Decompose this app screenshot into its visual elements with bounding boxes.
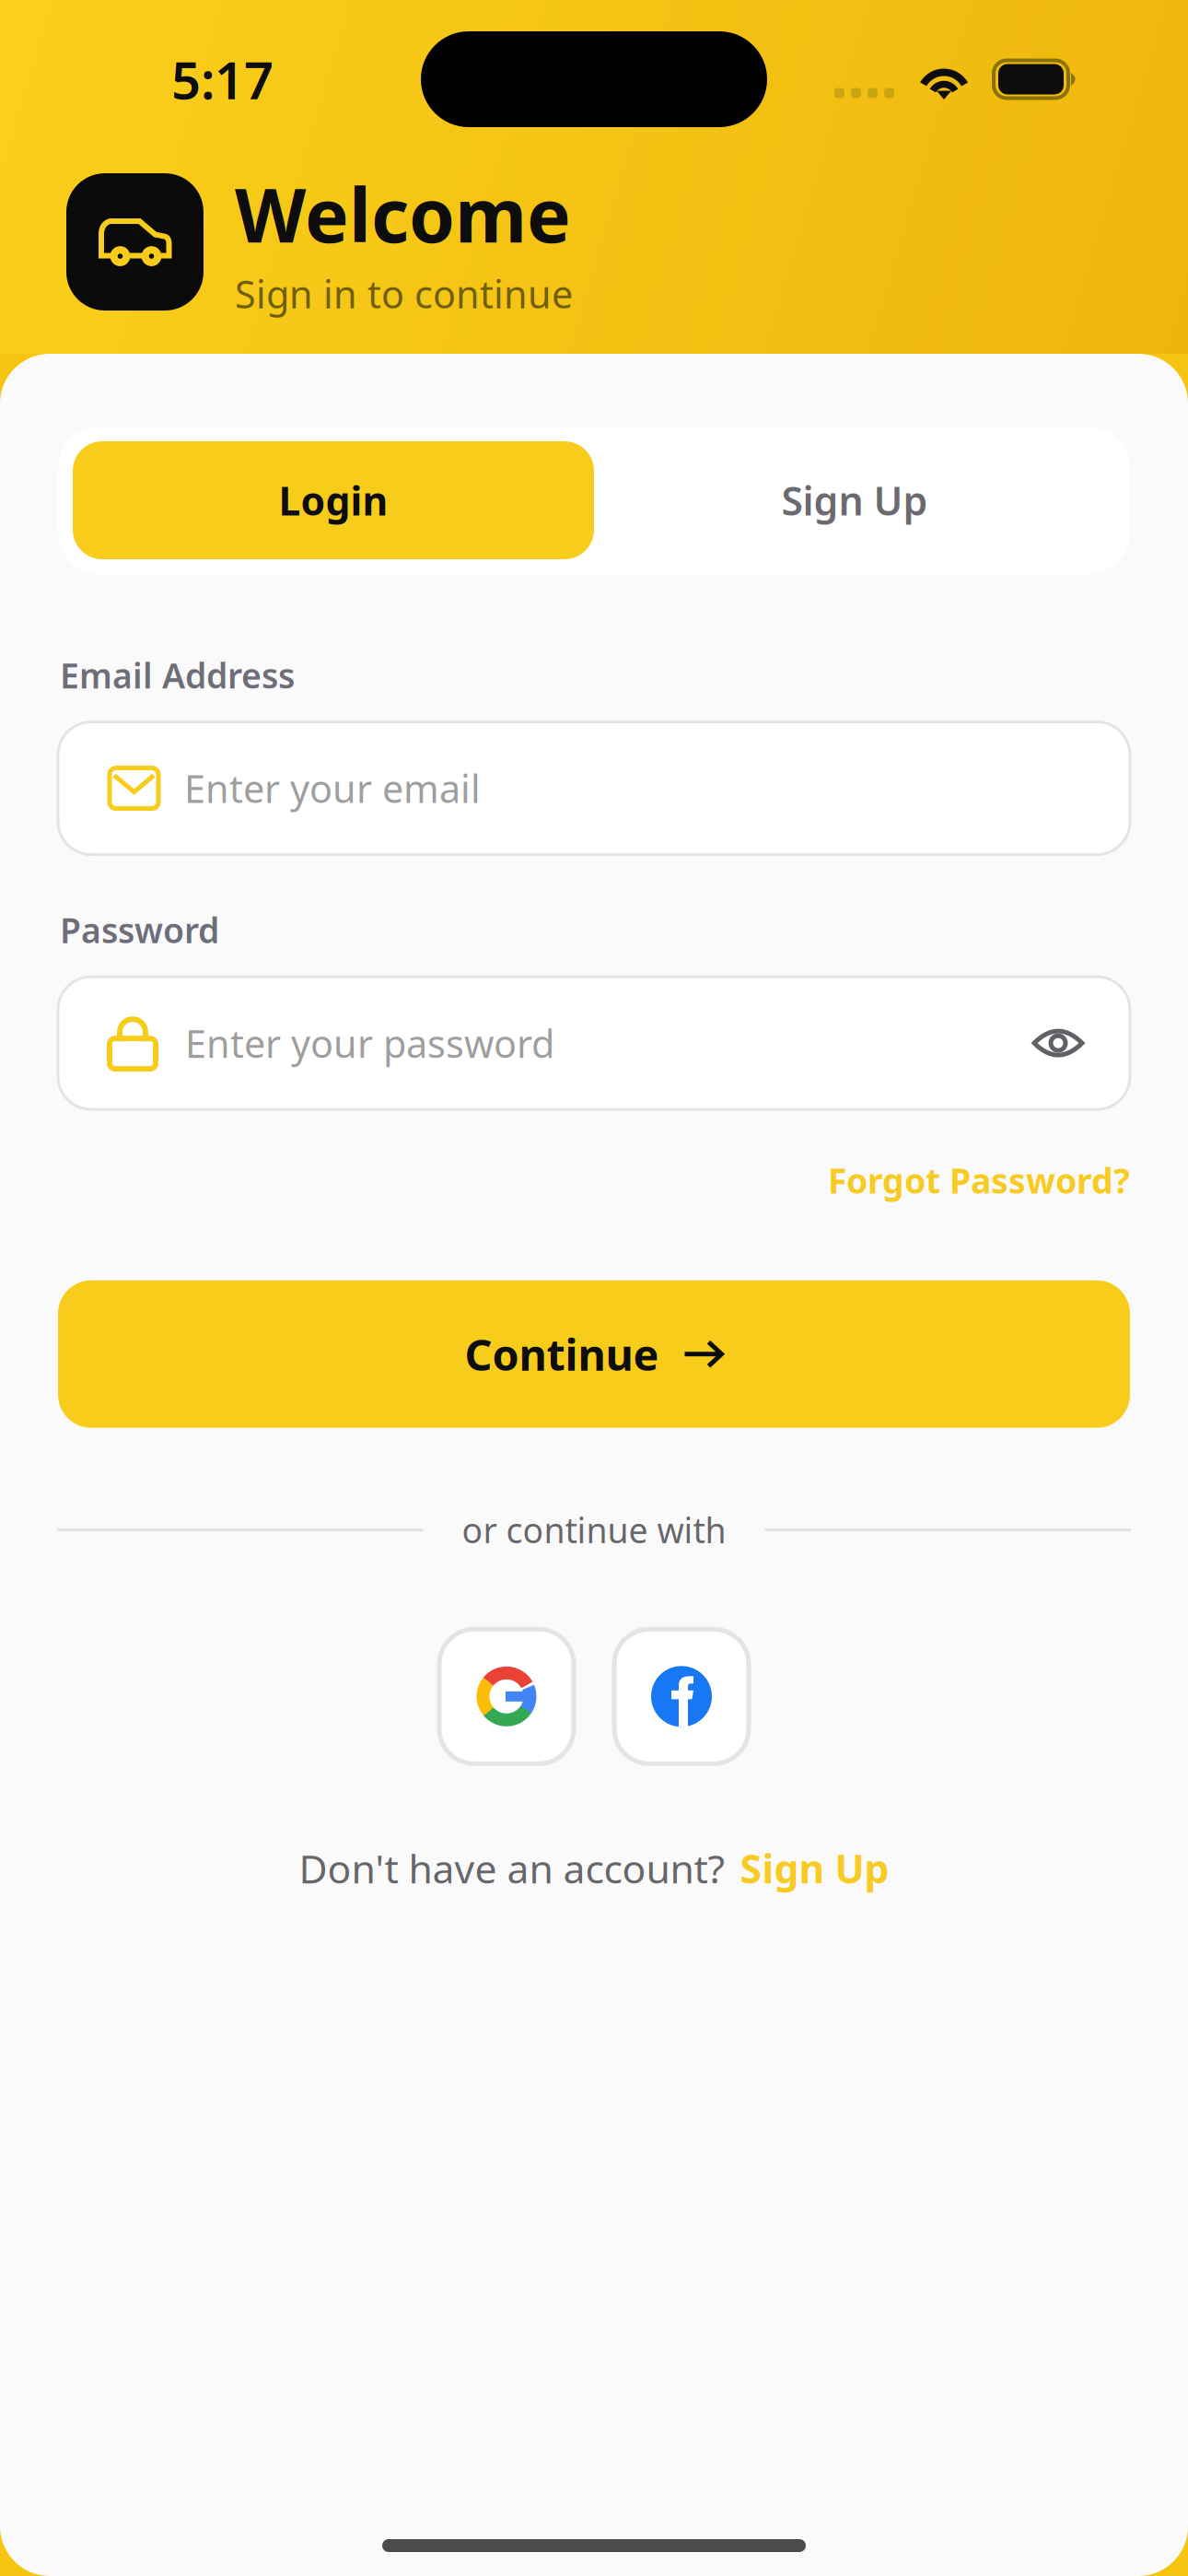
staticText: Sign Up xyxy=(740,1842,889,1894)
button[interactable]: Don't have an account? xyxy=(299,1842,889,1894)
staticText: or continue with xyxy=(462,1507,726,1553)
staticText: Password xyxy=(60,907,219,953)
button[interactable]: Continue with Google xyxy=(439,1629,574,1764)
staticText: Continue xyxy=(465,1325,659,1383)
staticText: Enter your email xyxy=(184,763,481,814)
button[interactable]: Continue xyxy=(58,1280,1130,1428)
button[interactable]: Show password xyxy=(1032,1027,1130,1059)
staticText: Email Address xyxy=(60,652,295,698)
button[interactable]: Sign Up xyxy=(594,441,1115,559)
staticText: Sign in to continue xyxy=(235,268,573,319)
staticText: Enter your password xyxy=(185,1018,554,1068)
staticText: Forgot Password? xyxy=(828,1157,1130,1203)
staticText: Sign Up xyxy=(781,474,928,526)
staticText: Login xyxy=(279,474,388,526)
button[interactable]: Continue with Facebook xyxy=(614,1629,749,1764)
staticText: Don't have an account? xyxy=(299,1842,725,1894)
button[interactable]: Login xyxy=(73,441,594,559)
staticText: Welcome xyxy=(235,165,571,263)
button[interactable]: Forgot Password? xyxy=(828,1157,1130,1203)
staticText: 5:17 xyxy=(171,45,274,114)
